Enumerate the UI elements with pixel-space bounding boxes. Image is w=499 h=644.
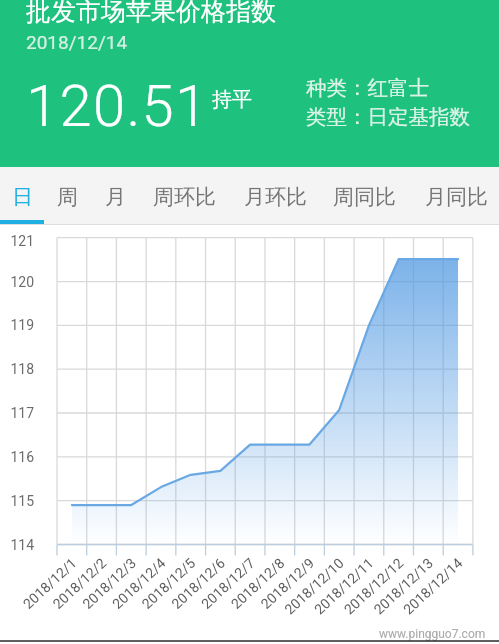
button[interactable]: 周 — [45, 169, 89, 224]
staticText: 周 — [57, 184, 78, 210]
button[interactable]: 月 — [93, 169, 137, 224]
staticText: 批发市场苹果价格指数 — [26, 0, 276, 27]
staticText: 种类：红富士 — [306, 75, 429, 101]
staticText: 120.51 — [26, 72, 209, 140]
button[interactable]: 周同比 — [322, 169, 406, 224]
staticText: 周环比 — [153, 184, 216, 210]
staticText: 日 — [12, 184, 33, 210]
button[interactable]: 周环比 — [142, 169, 226, 224]
staticText: 周同比 — [333, 184, 396, 210]
staticText: 持平 — [212, 87, 252, 112]
staticText: 月同比 — [425, 184, 488, 210]
button[interactable]: 月同比 — [414, 169, 498, 224]
staticText: 月环比 — [244, 184, 307, 210]
staticText: 月 — [105, 184, 126, 210]
staticText: 2018/12/14 — [26, 31, 128, 53]
button[interactable]: 月环比 — [233, 169, 317, 224]
staticText: 类型：日定基指数 — [306, 104, 470, 130]
button[interactable]: 日 — [0, 169, 44, 224]
